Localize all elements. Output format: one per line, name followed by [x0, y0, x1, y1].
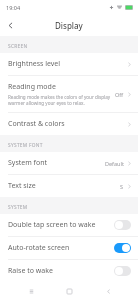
button[interactable]: Back	[100, 283, 116, 299]
staticText: SYSTEM FONT	[8, 142, 43, 149]
staticText: System font	[8, 158, 48, 168]
button[interactable]: Contrast & colors	[0, 113, 138, 135]
staticText: Reading mode	[8, 82, 56, 92]
staticText: Default	[105, 160, 124, 167]
staticText: SCREEN	[8, 43, 28, 50]
staticText: Reading mode makes the colors of your di…	[8, 94, 112, 106]
button[interactable]: Back	[0, 15, 20, 35]
button[interactable]: Auto-rotate screen	[0, 237, 138, 259]
staticText: Text size	[8, 181, 36, 191]
button[interactable]: System font	[0, 152, 138, 174]
staticText: Display	[55, 20, 83, 31]
button[interactable]: Double tap screen to wake	[0, 214, 138, 236]
button[interactable]: Recents	[23, 283, 39, 299]
button[interactable]: Brightness level	[0, 53, 138, 75]
button[interactable]: Raise to wake	[0, 260, 138, 282]
staticText: Raise to wake	[8, 266, 114, 276]
button[interactable]: Home	[61, 283, 77, 299]
button[interactable]: Text size	[0, 175, 138, 197]
button[interactable]: Reading mode	[0, 76, 138, 112]
staticText: Contrast & colors	[8, 119, 65, 129]
staticText: SYSTEM	[8, 204, 28, 211]
staticText: Off	[115, 91, 124, 98]
staticText: Auto-rotate screen	[8, 243, 114, 253]
staticText: S	[120, 183, 124, 190]
staticText: 19:04	[6, 4, 21, 11]
staticText: Double tap screen to wake	[8, 220, 114, 230]
staticText: Brightness level	[8, 59, 61, 69]
